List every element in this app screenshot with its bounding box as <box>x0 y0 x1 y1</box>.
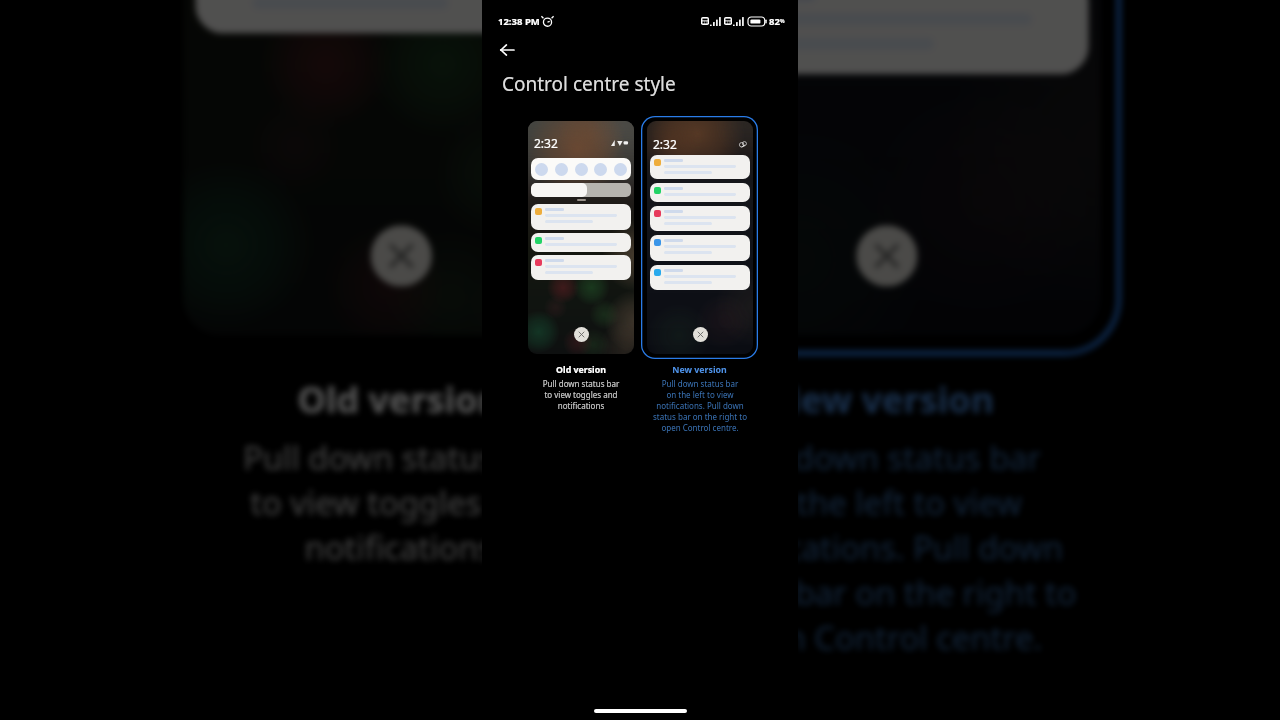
button[interactable]: 2:32 <box>528 121 634 354</box>
staticText: New version <box>672 364 727 376</box>
staticText: Old version <box>556 364 606 376</box>
staticText: Control centre style <box>502 71 676 97</box>
staticText: Pull down status bar to view toggles and… <box>195 433 603 568</box>
button[interactable]: 2:32 <box>641 116 758 359</box>
staticText: 2:32 <box>653 136 677 152</box>
staticText: Pull down status bar to view toggles and… <box>531 378 631 411</box>
button[interactable]: Back <box>493 36 521 64</box>
staticText: Pull down status bar on the left to view… <box>656 433 1113 658</box>
staticText: % <box>780 18 785 25</box>
staticText: 12:38 PM <box>498 15 540 28</box>
button[interactable]: Close <box>693 327 708 342</box>
staticText: 82 <box>769 15 780 28</box>
staticText: Old version <box>297 376 501 425</box>
staticText: 2:32 <box>534 135 558 151</box>
staticText: New version <box>771 376 995 425</box>
staticText: Pull down status bar on the left to view… <box>644 378 756 433</box>
button[interactable]: Close <box>574 327 589 342</box>
